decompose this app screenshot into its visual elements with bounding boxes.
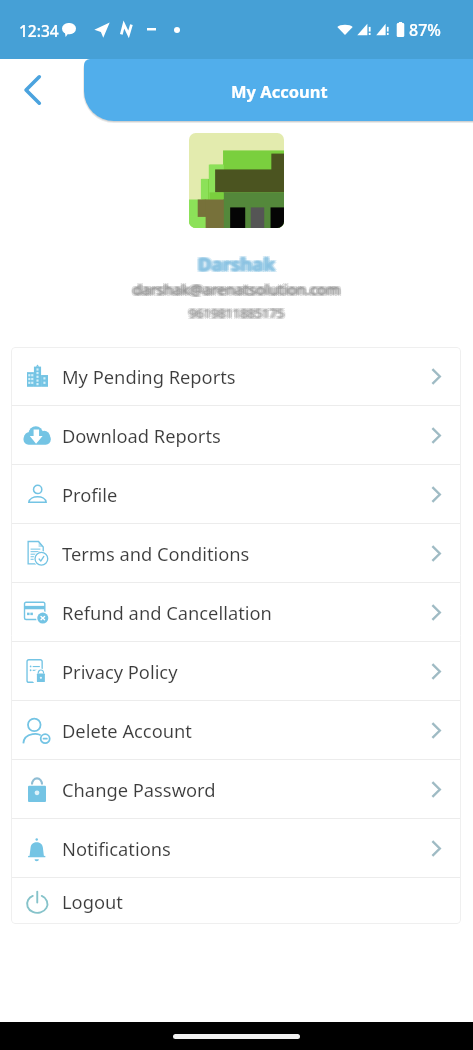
staticText: 9619811885175 (0, 305, 471, 322)
staticText: darshak@arenatsolution.com (1, 279, 473, 299)
staticText: Darshak (0, 251, 473, 276)
staticText: 87% (409, 19, 441, 41)
button[interactable]: Notifications (11, 819, 461, 877)
staticText: Darshak (0, 250, 473, 275)
staticText: Logout (62, 889, 123, 914)
staticText: darshak@arenatsolution.com (0, 280, 471, 300)
staticText: darshak@arenatsolution.com (0, 280, 473, 300)
staticText: darshak@arenatsolution.com (2, 278, 473, 298)
button[interactable]: Refund and Cancellation (11, 583, 461, 641)
staticText: 9619811885175 (2, 305, 473, 322)
staticText: Darshak (2, 252, 473, 277)
staticText: Darshak (0, 251, 472, 276)
staticText: 9619811885175 (0, 304, 472, 321)
staticText: 9619811885175 (2, 303, 473, 320)
staticText: 9619811885175 (0, 305, 473, 322)
staticText: Privacy Policy (62, 659, 178, 684)
staticText: Darshak (2, 250, 473, 275)
staticText: Profile (62, 482, 118, 507)
button[interactable]: Logout (11, 878, 461, 924)
staticText: Refund and Cancellation (62, 600, 272, 625)
staticText: 9619811885175 (0, 303, 473, 320)
staticText: Download Reports (62, 423, 221, 448)
staticText: 9619811885175 (0, 303, 471, 320)
staticText: My Account (231, 80, 328, 102)
staticText: Terms and Conditions (62, 541, 250, 566)
staticText: 9619811885175 (1, 304, 473, 321)
staticText: Darshak (0, 250, 471, 275)
button[interactable]: Change Password (11, 760, 461, 818)
staticText: darshak@arenatsolution.com (0, 279, 472, 299)
staticText: Notifications (62, 836, 171, 861)
staticText: darshak@arenatsolution.com (0, 279, 473, 299)
button[interactable]: Profile (11, 465, 461, 523)
staticText: My Pending Reports (62, 364, 236, 389)
staticText: darshak@arenatsolution.com (2, 280, 473, 300)
button[interactable]: Download Reports (11, 406, 461, 464)
staticText: Delete Account (62, 718, 192, 743)
button[interactable]: Delete Account (11, 701, 461, 759)
staticText: Darshak (0, 252, 471, 277)
staticText: darshak@arenatsolution.com (0, 278, 471, 298)
button[interactable]: Terms and Conditions (11, 524, 461, 582)
staticText: 12:34 (19, 20, 59, 41)
staticText: Darshak (1, 251, 473, 276)
button[interactable]: My Pending Reports (11, 347, 461, 405)
staticText: 9619811885175 (0, 304, 473, 321)
button[interactable]: Back (11, 69, 53, 111)
staticText: Darshak (0, 252, 473, 277)
staticText: darshak@arenatsolution.com (0, 278, 473, 298)
button[interactable]: Privacy Policy (11, 642, 461, 700)
staticText: Change Password (62, 777, 216, 802)
